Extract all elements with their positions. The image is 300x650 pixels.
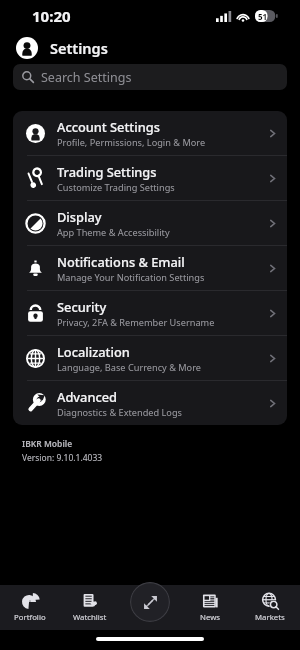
staticText: Notifications & Email [57,253,185,270]
button[interactable]: Localization [13,336,287,380]
staticText: Advanced [57,388,117,405]
staticText: Search Settings [41,69,132,86]
button[interactable]: Advanced [13,381,287,425]
staticText: Settings [50,38,108,58]
button[interactable]: Security [13,291,287,335]
button[interactable]: Portfolio [0,585,60,630]
staticText: Version: 9.10.1.4033 [22,452,103,464]
staticText: IBKR Mobile [22,438,73,450]
staticText: Profile, Permissions, Login & More [57,136,206,149]
staticText: News [200,612,221,623]
button[interactable]: Trade [130,582,170,622]
button[interactable]: News [180,585,240,630]
button[interactable]: Notifications & Email [13,246,287,290]
button[interactable]: Display [13,201,287,245]
staticText: Trading Settings [57,163,157,180]
staticText: Watchlist [73,612,107,623]
button[interactable]: Search Settings [13,64,287,90]
staticText: Diagnostics & Extended Logs [57,406,182,419]
staticText: Privacy, 2FA & Remember Username [57,316,215,329]
button[interactable]: Account Settings [13,111,287,155]
staticText: Security [57,298,107,315]
staticText: App Theme & Accessibility [57,226,170,239]
staticText: 10:20 [32,6,71,26]
staticText: Manage Your Notification Settings [57,271,205,284]
staticText: Display [57,208,102,225]
staticText: Account Settings [57,118,160,135]
staticText: Language, Base Currency & More [57,361,201,374]
staticText: Markets [255,612,285,623]
staticText: 51 [258,11,268,22]
button[interactable]: Account profile [16,37,38,59]
button[interactable]: Markets [240,585,300,630]
staticText: Customize Trading Settings [57,181,175,194]
staticText: Localization [57,343,130,360]
staticText: Portfolio [14,612,46,623]
button[interactable]: Watchlist [60,585,120,630]
button[interactable]: Trading Settings [13,156,287,200]
